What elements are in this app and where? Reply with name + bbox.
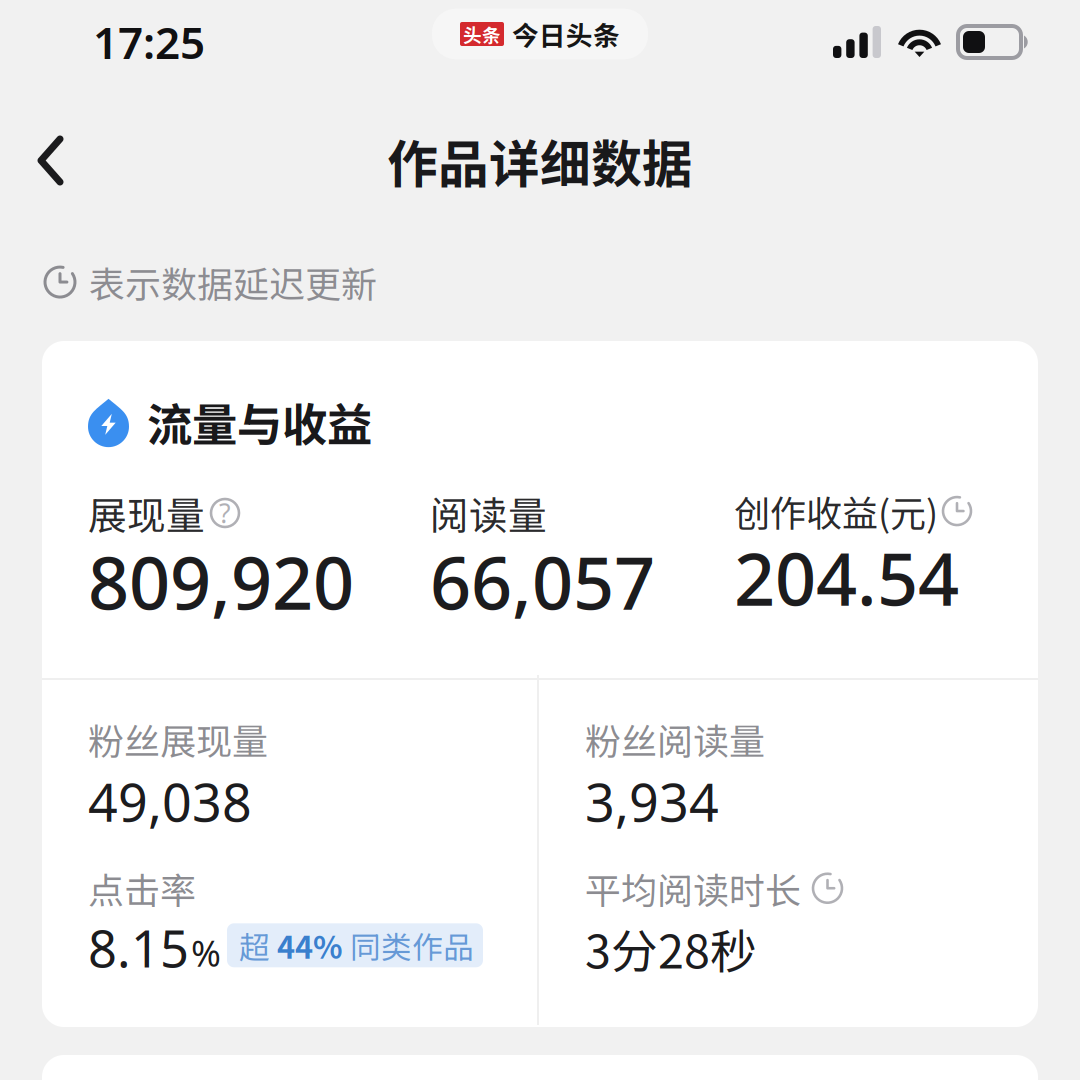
staticText: 粉丝阅读量 <box>585 713 765 765</box>
staticText: 3分28秒 <box>585 914 757 982</box>
staticText: 表示数据延迟更新 <box>89 256 377 308</box>
button[interactable]: 返回 <box>15 115 86 206</box>
staticText: 3,934 <box>585 767 719 836</box>
staticText: ? <box>219 495 231 531</box>
staticText: 流量与收益 <box>147 389 372 455</box>
staticText: % <box>191 929 221 977</box>
staticText: 头条 <box>463 20 501 47</box>
staticText: 今日头条 <box>512 15 620 53</box>
staticText: 展现量 <box>88 485 205 541</box>
staticText: 平均阅读时长 <box>585 862 801 914</box>
staticText: 49,038 <box>88 767 252 836</box>
staticText: 粉丝展现量 <box>88 713 268 765</box>
staticText: 点击率 <box>88 862 196 914</box>
staticText: 创作收益(元) <box>734 485 938 537</box>
staticText: 同类作品 <box>343 923 474 967</box>
staticText: 204.54 <box>734 530 959 626</box>
staticText: 66,057 <box>430 534 655 630</box>
staticText: 8.15 <box>88 914 189 982</box>
staticText: 44% <box>277 923 343 967</box>
staticText: 作品详细数据 <box>387 124 693 197</box>
staticText: 超 <box>239 923 277 967</box>
staticText: 阅读量 <box>430 485 547 541</box>
staticText: 809,920 <box>88 534 354 630</box>
staticText: 17:25 <box>93 13 205 71</box>
